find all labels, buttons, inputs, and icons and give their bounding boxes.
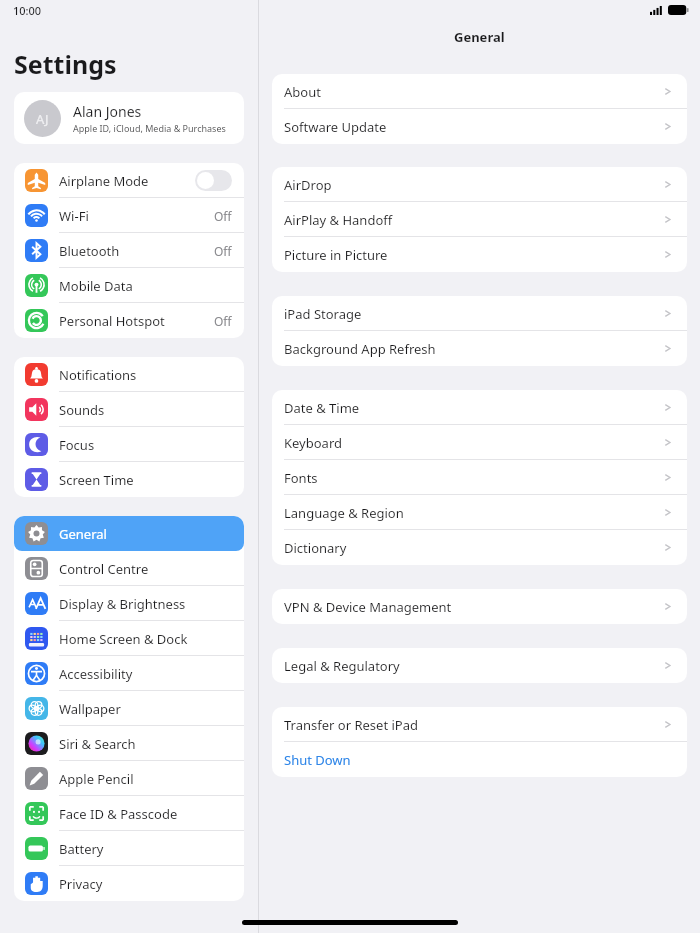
button[interactable]: Mobile Data [14, 268, 244, 303]
staticText: 10:00 [13, 3, 42, 18]
staticText: Off [214, 313, 232, 329]
staticText: Date & Time [284, 399, 360, 417]
button[interactable]: AJ [14, 92, 244, 144]
staticText: Bluetooth [59, 242, 120, 260]
staticText: Settings [14, 47, 117, 81]
staticText: VPN & Device Management [284, 598, 452, 616]
button[interactable]: Shut Down [272, 742, 687, 777]
button[interactable]: Screen Time [14, 462, 244, 497]
staticText: General [454, 28, 505, 46]
staticText: Dictionary [284, 539, 347, 557]
staticText: Wallpaper [59, 700, 121, 718]
button[interactable]: Dictionary [272, 530, 687, 565]
staticText: Screen Time [59, 471, 134, 489]
other: Signal strength [650, 6, 663, 15]
button[interactable]: Display & Brightness [14, 586, 244, 621]
button[interactable]: About [272, 74, 687, 109]
button[interactable]: Transfer or Reset iPad [272, 707, 687, 742]
other: Battery [668, 5, 689, 15]
staticText: Siri & Search [59, 735, 136, 753]
staticText: Off [214, 243, 232, 259]
button[interactable]: Date & Time [272, 390, 687, 425]
button[interactable]: Keyboard [272, 425, 687, 460]
button[interactable]: Bluetooth [14, 233, 244, 268]
button[interactable]: Home Screen & Dock [14, 621, 244, 656]
staticText: Airplane Mode [59, 172, 149, 190]
staticText: Alan Jones [73, 102, 142, 121]
button[interactable]: Legal & Regulatory [272, 648, 687, 683]
button[interactable]: Sounds [14, 392, 244, 427]
button[interactable]: General [14, 516, 244, 551]
button[interactable]: iPad Storage [272, 296, 687, 331]
button[interactable]: Notifications [14, 357, 244, 392]
staticText: Notifications [59, 366, 137, 384]
staticText: AirPlay & Handoff [284, 211, 393, 229]
staticText: Software Update [284, 118, 387, 136]
staticText: Apple ID, iCloud, Media & Purchases [73, 122, 226, 134]
staticText: Control Centre [59, 560, 149, 578]
staticText: Face ID & Passcode [59, 805, 178, 823]
button[interactable]: Background App Refresh [272, 331, 687, 366]
staticText: iPad Storage [284, 305, 362, 323]
button[interactable]: Airplane Mode [14, 163, 244, 198]
button[interactable]: Accessibility [14, 656, 244, 691]
button[interactable]: Wallpaper [14, 691, 244, 726]
button[interactable]: Personal Hotspot [14, 303, 244, 338]
staticText: Privacy [59, 875, 103, 893]
button[interactable]: Language & Region [272, 495, 687, 530]
staticText: Shut Down [284, 751, 351, 769]
staticText: AJ [36, 110, 49, 128]
button[interactable]: Privacy [14, 866, 244, 901]
staticText: Picture in Picture [284, 246, 388, 264]
staticText: AirDrop [284, 176, 332, 194]
staticText: Language & Region [284, 504, 404, 522]
button[interactable]: Picture in Picture [272, 237, 687, 272]
button[interactable]: AirPlay & Handoff [272, 202, 687, 237]
staticText: Battery [59, 840, 104, 858]
staticText: Wi-Fi [59, 207, 89, 225]
staticText: Background App Refresh [284, 340, 436, 358]
staticText: Transfer or Reset iPad [284, 716, 418, 734]
button[interactable]: Focus [14, 427, 244, 462]
staticText: Display & Brightness [59, 595, 186, 613]
staticText: Accessibility [59, 665, 133, 683]
button[interactable]: VPN & Device Management [272, 589, 687, 624]
button[interactable]: Fonts [272, 460, 687, 495]
button[interactable]: Siri & Search [14, 726, 244, 761]
button[interactable]: Control Centre [14, 551, 244, 586]
button[interactable]: Apple Pencil [14, 761, 244, 796]
staticText: Legal & Regulatory [284, 657, 400, 675]
staticText: Off [214, 208, 232, 224]
button[interactable]: Wi-Fi [14, 198, 244, 233]
button[interactable]: Battery [14, 831, 244, 866]
staticText: Keyboard [284, 434, 343, 452]
button[interactable]: AirDrop [272, 167, 687, 202]
button[interactable]: Software Update [272, 109, 687, 144]
staticText: Mobile Data [59, 277, 133, 295]
staticText: Personal Hotspot [59, 312, 165, 330]
staticText: Focus [59, 436, 95, 454]
staticText: General [59, 525, 107, 543]
staticText: Sounds [59, 401, 105, 419]
staticText: Home Screen & Dock [59, 630, 188, 648]
button[interactable]: Face ID & Passcode [14, 796, 244, 831]
staticText: Apple Pencil [59, 770, 134, 788]
staticText: About [284, 83, 321, 101]
staticText: Fonts [284, 469, 318, 487]
